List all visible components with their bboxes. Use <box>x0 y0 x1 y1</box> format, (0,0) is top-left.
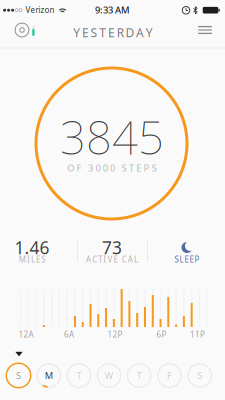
button[interactable]: 1.46 <box>2 234 62 266</box>
button[interactable]: Sleep <box>157 234 217 266</box>
staticText: 9:33 AM <box>95 4 130 16</box>
staticText: E <box>108 24 115 40</box>
staticText: R <box>117 24 124 40</box>
staticText: 73 <box>102 236 122 259</box>
staticText: P <box>194 254 199 265</box>
staticText: E <box>189 254 193 265</box>
button[interactable]: M <box>36 362 62 388</box>
staticText: 0 <box>110 162 115 174</box>
staticText: 3845 <box>60 107 164 167</box>
staticText: S <box>197 369 202 382</box>
staticText: L <box>179 254 183 265</box>
staticText: 3 <box>88 162 93 174</box>
button[interactable]: Device sync <box>9 17 45 43</box>
staticText: S <box>91 24 98 40</box>
staticText: D <box>125 24 134 40</box>
staticText: S <box>152 162 157 174</box>
staticText: Y <box>146 24 153 40</box>
staticText: 0 <box>95 162 100 174</box>
staticText: T <box>137 369 142 382</box>
staticText: E <box>184 254 188 265</box>
button[interactable]: S <box>5 362 31 388</box>
button[interactable]: W <box>96 362 122 388</box>
staticText: M <box>45 369 53 382</box>
staticText: 12A <box>18 329 33 340</box>
staticText: ACTIVE CAL <box>86 254 138 265</box>
staticText: P <box>143 162 149 174</box>
staticText: T <box>76 369 81 382</box>
staticText: MILES <box>19 254 45 265</box>
staticText: 6A <box>64 329 74 340</box>
button[interactable]: T <box>126 362 152 388</box>
staticText: W <box>105 369 114 382</box>
staticText: S <box>122 162 127 174</box>
button[interactable]: T <box>66 362 92 388</box>
staticText: 0 <box>103 162 108 174</box>
staticText: S <box>16 369 21 382</box>
staticText: E <box>82 24 89 40</box>
staticText: 1.46 <box>14 236 49 259</box>
staticText: A <box>136 24 144 40</box>
staticText: O <box>67 162 74 174</box>
staticText: 11P <box>190 329 205 340</box>
staticText: T <box>99 24 106 40</box>
button[interactable]: 73 <box>80 234 144 266</box>
staticText: E <box>136 162 141 174</box>
staticText: Y <box>73 24 80 40</box>
staticText: T <box>129 162 134 174</box>
staticText: F <box>76 162 81 174</box>
staticText: 12P <box>107 329 122 340</box>
staticText: 6P <box>156 329 166 340</box>
staticText: Verizon <box>25 5 54 15</box>
button[interactable]: F <box>156 362 182 388</box>
staticText: F <box>167 369 172 382</box>
button[interactable]: S <box>187 362 213 388</box>
button[interactable]: Menu <box>193 19 217 41</box>
staticText: S <box>174 254 178 265</box>
